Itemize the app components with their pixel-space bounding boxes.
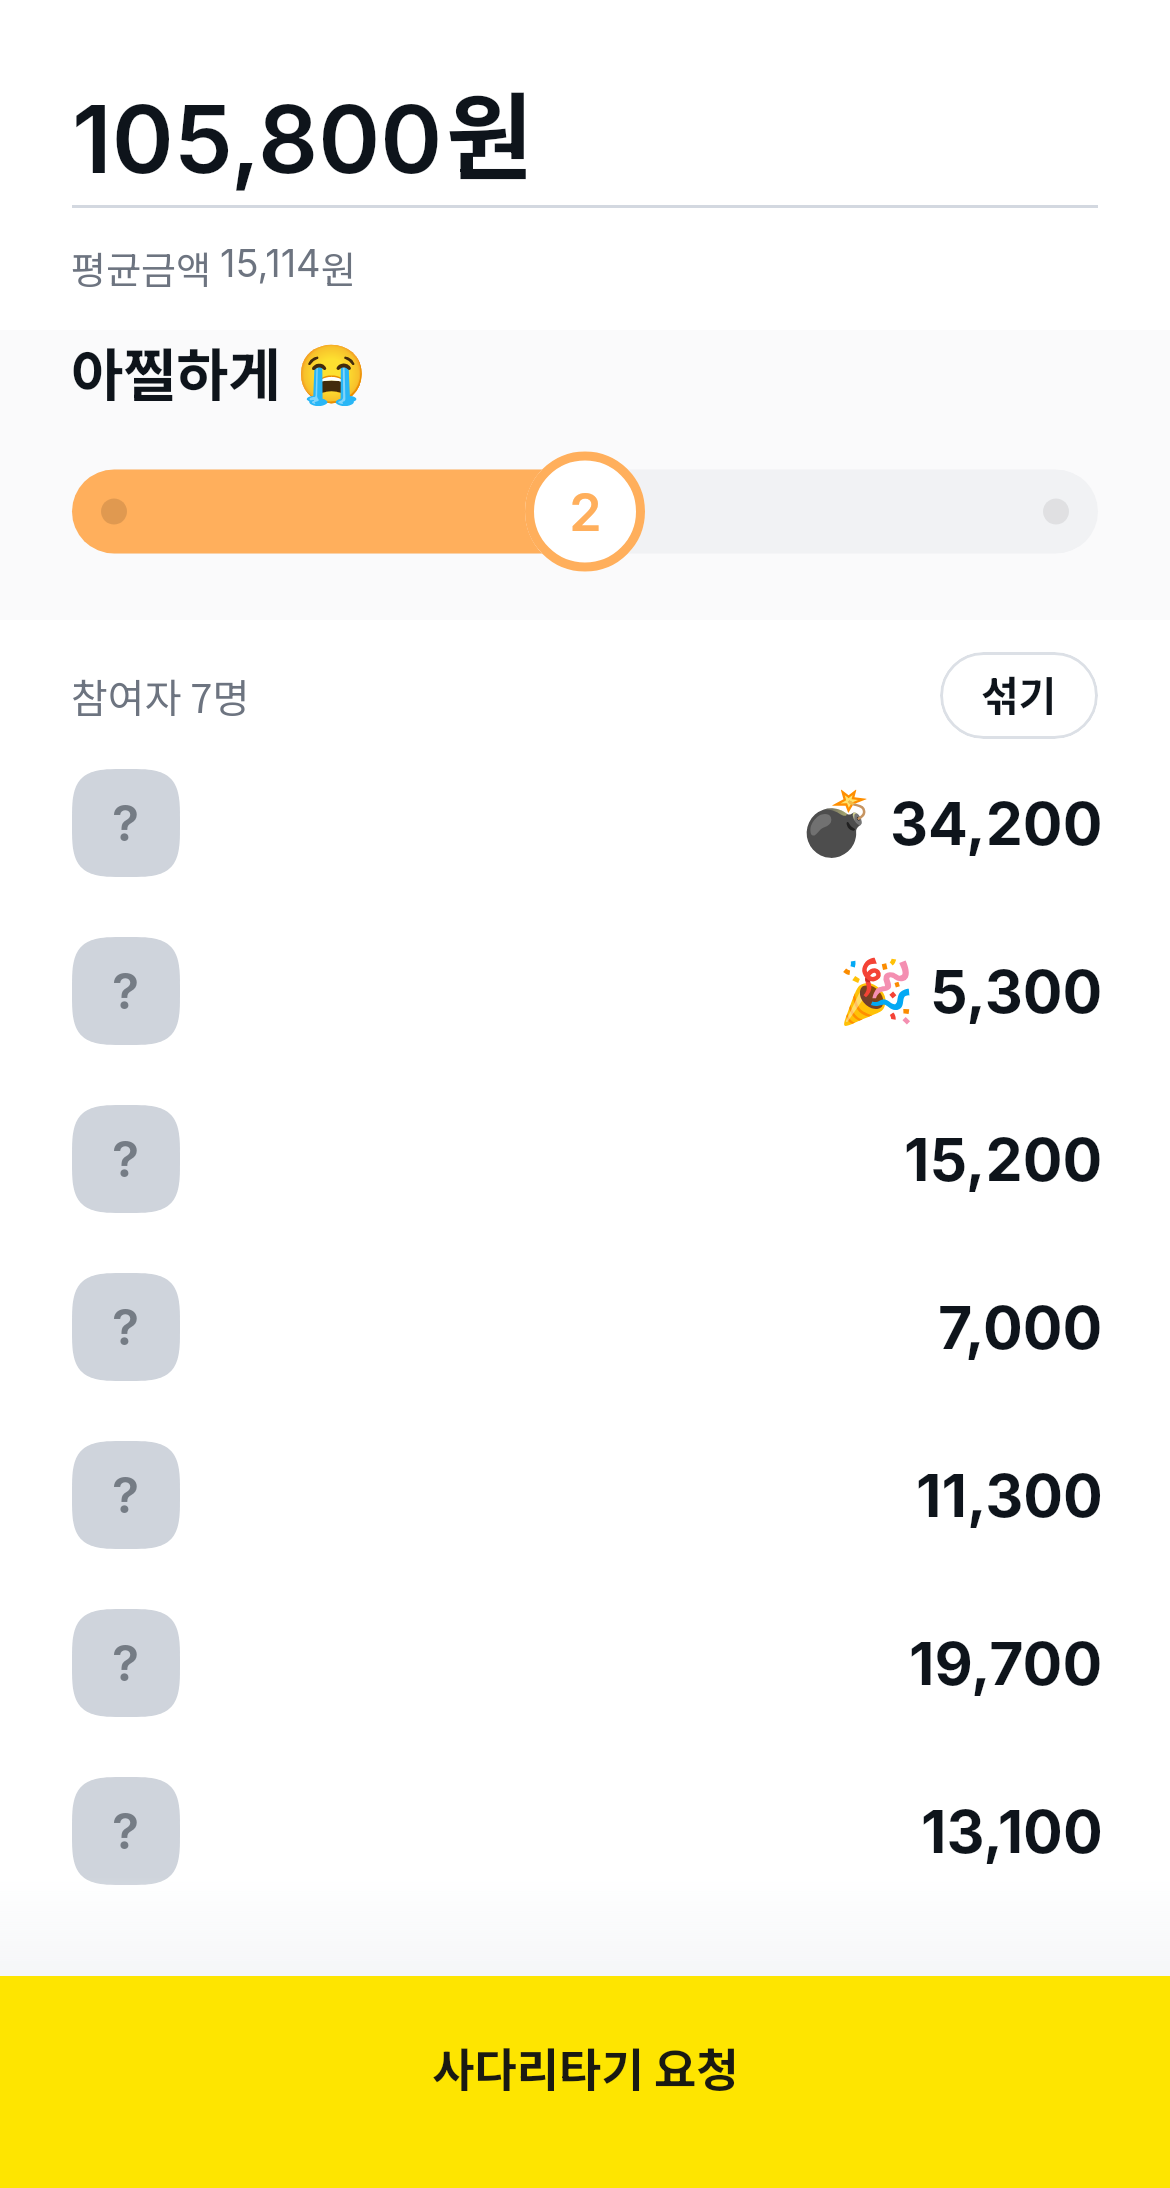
button[interactable]: ? xyxy=(0,1075,1170,1243)
button[interactable]: ? xyxy=(0,907,1170,1075)
button[interactable]: ? xyxy=(0,1579,1170,1747)
staticText: ? xyxy=(112,793,140,853)
staticText: 참여자 7명 xyxy=(71,667,250,725)
staticText: ? xyxy=(112,961,140,1021)
button[interactable]: Amount slider xyxy=(0,441,1170,582)
staticText: 34,200 xyxy=(890,788,1103,859)
staticText: 15,114 xyxy=(220,240,321,286)
staticText: 원 xyxy=(321,240,356,295)
staticText: ? xyxy=(112,1801,140,1861)
staticText: 💣 xyxy=(798,787,876,860)
staticText: 평균금액 xyxy=(71,240,220,295)
staticText: ? xyxy=(112,1297,140,1357)
staticText: 😭 xyxy=(296,341,367,408)
staticText: 🎉 xyxy=(838,955,916,1028)
button[interactable]: 사다리타기 요청 xyxy=(0,1976,1170,2188)
staticText: 15,200 xyxy=(904,1124,1103,1195)
staticText: 아찔하게 xyxy=(71,330,281,413)
staticText: 11,300 xyxy=(916,1460,1103,1531)
staticText: 13,100 xyxy=(921,1796,1103,1867)
staticText: 19,700 xyxy=(909,1628,1103,1699)
staticText: 원 xyxy=(446,62,534,200)
staticText: ? xyxy=(112,1465,140,1525)
button[interactable]: ? xyxy=(0,1243,1170,1411)
staticText: ? xyxy=(112,1633,140,1693)
staticText: 2 xyxy=(569,481,602,544)
staticText: 사다리타기 요청 xyxy=(432,2034,739,2101)
button[interactable]: ? xyxy=(0,1747,1170,1915)
staticText: 5,300 xyxy=(930,956,1103,1027)
staticText: 105,800 xyxy=(72,82,443,196)
button[interactable]: ? xyxy=(0,739,1170,907)
staticText: 섞기 xyxy=(981,663,1057,722)
staticText: ? xyxy=(112,1129,140,1189)
button[interactable]: ? xyxy=(0,1411,1170,1579)
button[interactable]: 섞기 xyxy=(940,652,1098,739)
staticText: 7,000 xyxy=(938,1292,1103,1363)
